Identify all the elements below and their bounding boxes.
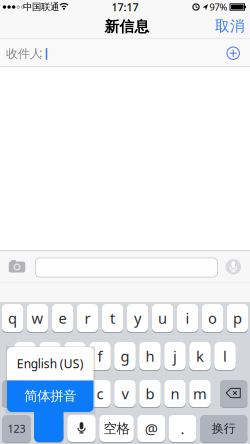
staticText: 空格 [103,420,129,437]
staticText: i [185,308,189,328]
staticText: 新信息 [104,17,149,35]
staticText: c [96,384,103,403]
button[interactable]: h [139,341,160,370]
staticText: 简体拼音 [24,388,76,404]
button[interactable]: Delete [220,379,247,407]
button[interactable]: 空格 [99,414,133,442]
staticText: o [208,308,217,328]
button[interactable]: p [227,303,248,332]
staticText: g [120,346,129,366]
button[interactable]: n [164,379,185,407]
button[interactable]: 换行 [200,414,247,442]
button[interactable]: k [189,341,210,370]
staticText: z [46,384,53,403]
button[interactable]: o [202,303,223,332]
button[interactable]: t [102,303,123,332]
staticText: h [145,346,154,366]
staticText: y [134,308,141,328]
button[interactable]: x [64,379,85,407]
button[interactable]: q [2,303,23,332]
staticText: p [233,308,242,328]
staticText: 取消 [215,17,245,35]
staticText: f [97,346,102,366]
button[interactable]: Camera [0,0,250,444]
button[interactable]: Add Contact [0,0,250,444]
button[interactable] [35,414,63,442]
button[interactable]: 简体拼音 [7,381,93,411]
staticText: 97% [209,1,227,13]
button[interactable]: 取消 [213,16,247,36]
staticText: k [196,346,204,366]
staticText: s [46,346,53,366]
button[interactable]: m [189,379,210,407]
staticText: w [31,308,43,328]
staticText: u [158,308,167,328]
staticText: d [70,346,79,366]
button[interactable]: u [152,303,173,332]
staticText: 17:17 [111,0,138,14]
staticText: 收件人 [6,46,42,61]
button[interactable]: g [114,341,135,370]
button[interactable]: l [214,341,235,370]
staticText: n [170,384,179,403]
staticText: b [145,384,154,403]
button[interactable]: f [89,341,110,370]
staticText: 123 [7,421,25,436]
button[interactable]: @ [137,414,165,442]
staticText: j [173,346,177,366]
staticText: @ [145,419,158,438]
button[interactable]: e [52,303,73,332]
button[interactable]: . [169,414,196,442]
staticText: . [180,419,184,438]
staticText: 中国联通 [23,1,59,13]
button[interactable]: c [89,379,110,407]
button[interactable]: Record Audio [0,0,250,444]
staticText: English (US) [17,355,84,371]
button[interactable]: w [27,303,48,332]
staticText: 换行 [212,421,236,436]
button[interactable]: z [39,379,60,407]
button[interactable]: r [77,303,98,332]
button[interactable]: English (US) [7,347,93,379]
button[interactable]: d [64,341,85,370]
staticText: x [71,384,79,403]
button[interactable]: y [127,303,148,332]
staticText: r [84,308,90,328]
staticText: v [121,384,128,403]
button[interactable]: Shift [2,379,29,407]
button[interactable]: a [14,341,35,370]
staticText: q [8,308,17,328]
staticText: a [21,346,29,366]
button[interactable]: b [139,379,160,407]
button[interactable]: j [164,341,185,370]
button[interactable]: 123 [2,414,31,442]
button[interactable]: s [39,341,60,370]
staticText: l [223,346,227,366]
button[interactable]: Dictate [67,414,95,442]
staticText: t [110,308,115,328]
button[interactable]: i [177,303,198,332]
button[interactable]: v [114,379,135,407]
staticText: m [193,384,207,403]
staticText: e [58,308,66,328]
